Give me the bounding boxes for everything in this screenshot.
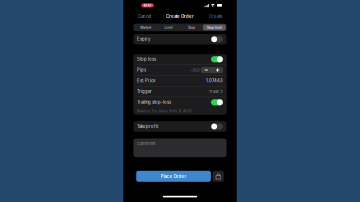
staticText: 1.07443 [206, 78, 223, 83]
staticText: Stop [188, 25, 195, 29]
button[interactable]: Expiry [133, 34, 227, 44]
staticText: Create [209, 14, 222, 19]
button[interactable]: Comment [133, 138, 227, 157]
staticText: Trailing stop-loss [137, 100, 171, 105]
button[interactable]: Cancel [137, 13, 152, 20]
button[interactable]: Increase pips [212, 67, 223, 73]
staticText: Limit [165, 25, 173, 29]
button[interactable]: Create [208, 13, 223, 20]
staticText: -25.0 [190, 68, 199, 72]
staticText: Trigger [137, 89, 152, 94]
staticText: Balance: Est. Gross Profit: $ -48.67 [137, 109, 192, 113]
button[interactable]: Trailing stop-loss [133, 97, 227, 107]
staticText: Expiry [137, 37, 150, 42]
staticText: Pips [137, 67, 146, 73]
button[interactable]: Take profit [133, 121, 227, 132]
staticText: Create Order [166, 14, 194, 19]
button[interactable]: Calculator [213, 171, 224, 182]
button[interactable]: Decrease pips [201, 67, 212, 73]
button[interactable]: Stop loss [133, 54, 227, 64]
button[interactable]: Limit [157, 24, 180, 30]
staticText: Take profit [137, 124, 158, 129]
staticText: Trade [209, 89, 219, 94]
staticText: Cancel [138, 14, 151, 19]
staticText: Comment [137, 141, 155, 146]
staticText: 10:47 [144, 3, 152, 7]
staticText: Est. Price [137, 78, 155, 83]
button[interactable]: Stop limit [203, 24, 226, 30]
staticText: Stop limit [207, 25, 222, 29]
staticText: Place Order [160, 174, 186, 179]
button[interactable]: Place Order [136, 171, 211, 182]
staticText: Stop loss [137, 57, 156, 62]
button[interactable]: Trigger [133, 86, 227, 97]
staticText: Market [140, 25, 151, 29]
button[interactable]: Market [134, 24, 157, 30]
button[interactable]: Stop [180, 24, 203, 30]
